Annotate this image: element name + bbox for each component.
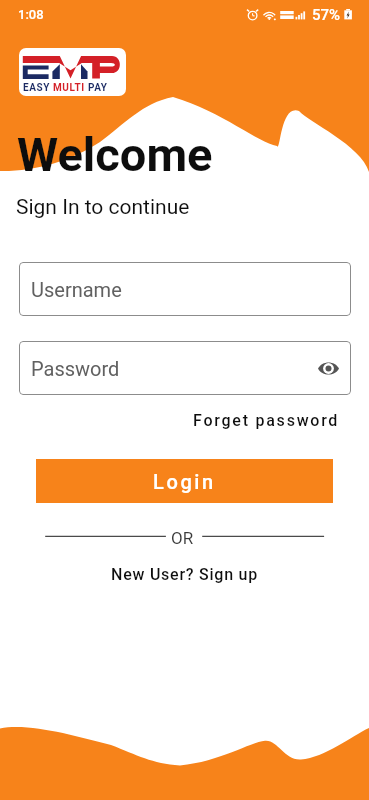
staticText: Username bbox=[31, 278, 122, 301]
staticText: PAY bbox=[88, 82, 108, 94]
button[interactable]: New User? Sign up bbox=[0, 565, 369, 584]
button[interactable]: Forget password bbox=[193, 411, 340, 430]
staticText: Sign In to continue bbox=[16, 195, 190, 220]
button[interactable]: Login bbox=[36, 459, 333, 503]
staticText: 1:08 bbox=[18, 7, 44, 22]
button[interactable]: Password bbox=[19, 341, 351, 395]
staticText: EASY bbox=[23, 82, 53, 94]
staticText: Password bbox=[31, 357, 120, 380]
staticText: Welcome bbox=[17, 127, 213, 182]
other: EMP Easy Multi Pay logo bbox=[19, 48, 126, 96]
button[interactable]: Username bbox=[19, 262, 351, 316]
staticText: 57% bbox=[312, 6, 341, 24]
button[interactable]: Show password bbox=[315, 355, 341, 381]
staticText: Login bbox=[153, 470, 216, 493]
staticText: OR bbox=[171, 528, 194, 548]
staticText: MULTI bbox=[53, 82, 88, 94]
